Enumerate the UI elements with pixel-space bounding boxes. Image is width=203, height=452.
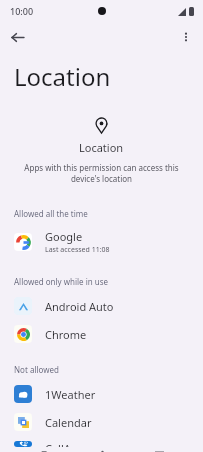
staticText: Apps with this permission can access thi…	[22, 162, 181, 184]
staticText: Chrome	[45, 327, 87, 342]
button[interactable]: Back	[4, 24, 30, 50]
button[interactable]: 1Weather	[0, 380, 203, 408]
staticText: 1Weather	[45, 387, 96, 402]
staticText: Android Auto	[45, 299, 114, 314]
staticText: Allowed only while in use	[14, 276, 109, 287]
staticText: Calendar	[45, 415, 92, 430]
button[interactable]: Calendar	[0, 408, 203, 436]
button[interactable]: Android Auto	[0, 292, 203, 320]
staticText: Location	[14, 60, 111, 93]
staticText: 10:00	[10, 5, 34, 17]
button[interactable]: More options	[173, 24, 199, 50]
staticText: Allowed all the time	[14, 208, 88, 219]
staticText: Last accessed 11:08	[45, 245, 110, 255]
staticText: Location	[79, 140, 124, 155]
staticText: CallApp	[45, 441, 85, 447]
button[interactable]: Google	[0, 224, 203, 260]
staticText: Not allowed	[14, 364, 59, 375]
button[interactable]: CallApp	[0, 436, 203, 452]
staticText: Google	[45, 229, 83, 244]
button[interactable]: Chrome	[0, 320, 203, 348]
